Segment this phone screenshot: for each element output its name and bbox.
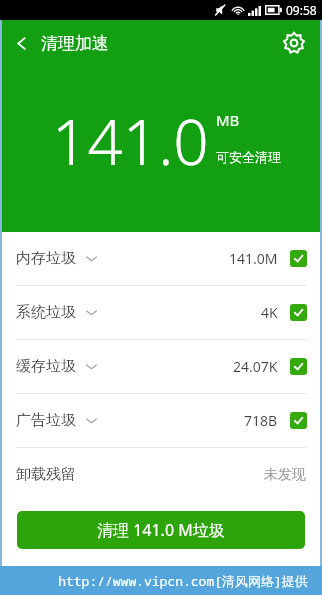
button[interactable]: 清理 141.0 M垃圾 (17, 511, 305, 549)
staticText: 缓存垃圾 (16, 357, 76, 376)
staticText: http://www.vipcn.com[清风网络]提供 (58, 572, 308, 590)
staticText: 未发现 (264, 466, 306, 484)
staticText: 内存垃圾 (16, 249, 76, 268)
staticText: 141.0 (52, 99, 209, 183)
button[interactable]: 广告垃圾 (0, 394, 322, 447)
button[interactable]: Selected 内存垃圾 (290, 250, 307, 267)
staticText: 24.07K (233, 357, 278, 376)
button[interactable]: Selected 缓存垃圾 (290, 358, 307, 375)
staticText: MB (216, 110, 240, 130)
button[interactable]: Selected 系统垃圾 (290, 304, 307, 321)
staticText: 广告垃圾 (16, 411, 76, 430)
staticText: 141.0M (229, 249, 278, 268)
button[interactable]: Settings (276, 25, 312, 61)
button[interactable]: 系统垃圾 (0, 286, 322, 339)
staticText: 4K (261, 303, 278, 322)
staticText: 清理 141.0 M垃圾 (97, 519, 225, 541)
button[interactable]: Selected 广告垃圾 (290, 412, 307, 429)
staticText: 系统垃圾 (16, 303, 76, 322)
button[interactable]: 卸载残留 (0, 448, 322, 501)
staticText: 卸载残留 (16, 465, 76, 484)
button[interactable]: 内存垃圾 (0, 232, 322, 285)
staticText: 可安全清理 (216, 149, 281, 165)
button[interactable]: Back (0, 27, 119, 60)
staticText: 清理加速 (41, 33, 109, 54)
staticText: 09:58 (286, 2, 317, 18)
button[interactable]: 缓存垃圾 (0, 340, 322, 393)
staticText: 718B (244, 411, 278, 430)
